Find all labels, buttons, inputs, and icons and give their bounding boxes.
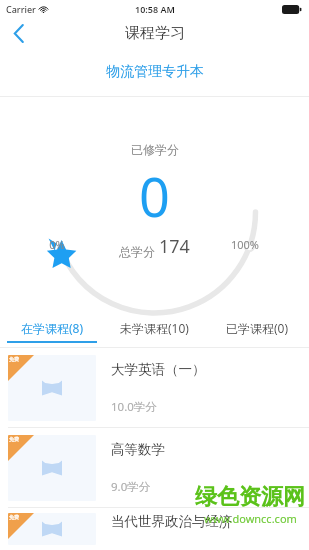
staticText: 当代世界政治与经济: [111, 513, 233, 530]
button[interactable]: 在学课程(8): [0, 315, 103, 347]
staticText: 免费: [9, 436, 19, 442]
staticText: 0%: [42, 237, 72, 252]
button[interactable]: 物流管理专升本: [0, 48, 309, 96]
button[interactable]: 免费: [0, 508, 309, 550]
staticText: 课程学习: [125, 24, 185, 43]
staticText: 在学课程(8): [21, 320, 84, 336]
staticText: 10:58 AM: [135, 3, 175, 15]
staticText: 高等数学: [111, 441, 165, 458]
staticText: 9.0学分: [111, 479, 151, 495]
button[interactable]: 未学课程(10): [103, 315, 206, 347]
staticText: 100%: [222, 237, 268, 252]
staticText: 未学课程(10): [120, 320, 189, 336]
staticText: 已学课程(0): [226, 320, 289, 336]
button[interactable]: Back: [0, 18, 38, 48]
staticText: Carrier: [6, 3, 36, 15]
staticText: 10.0学分: [111, 399, 157, 415]
button[interactable]: 免费: [0, 428, 309, 507]
staticText: 总学分: [119, 244, 155, 259]
staticText: 物流管理专升本: [106, 63, 204, 81]
button[interactable]: 已学课程(0): [206, 315, 309, 347]
staticText: 绿色资源网: [195, 483, 305, 511]
button[interactable]: 免费: [0, 348, 309, 427]
staticText: 0: [139, 159, 170, 233]
staticText: 免费: [9, 356, 19, 362]
staticText: www.downcc.com: [204, 511, 297, 526]
staticText: 已修学分: [131, 142, 179, 157]
staticText: 大学英语（一）: [111, 361, 206, 378]
staticText: 免费: [9, 514, 19, 520]
staticText: 174: [159, 234, 190, 259]
